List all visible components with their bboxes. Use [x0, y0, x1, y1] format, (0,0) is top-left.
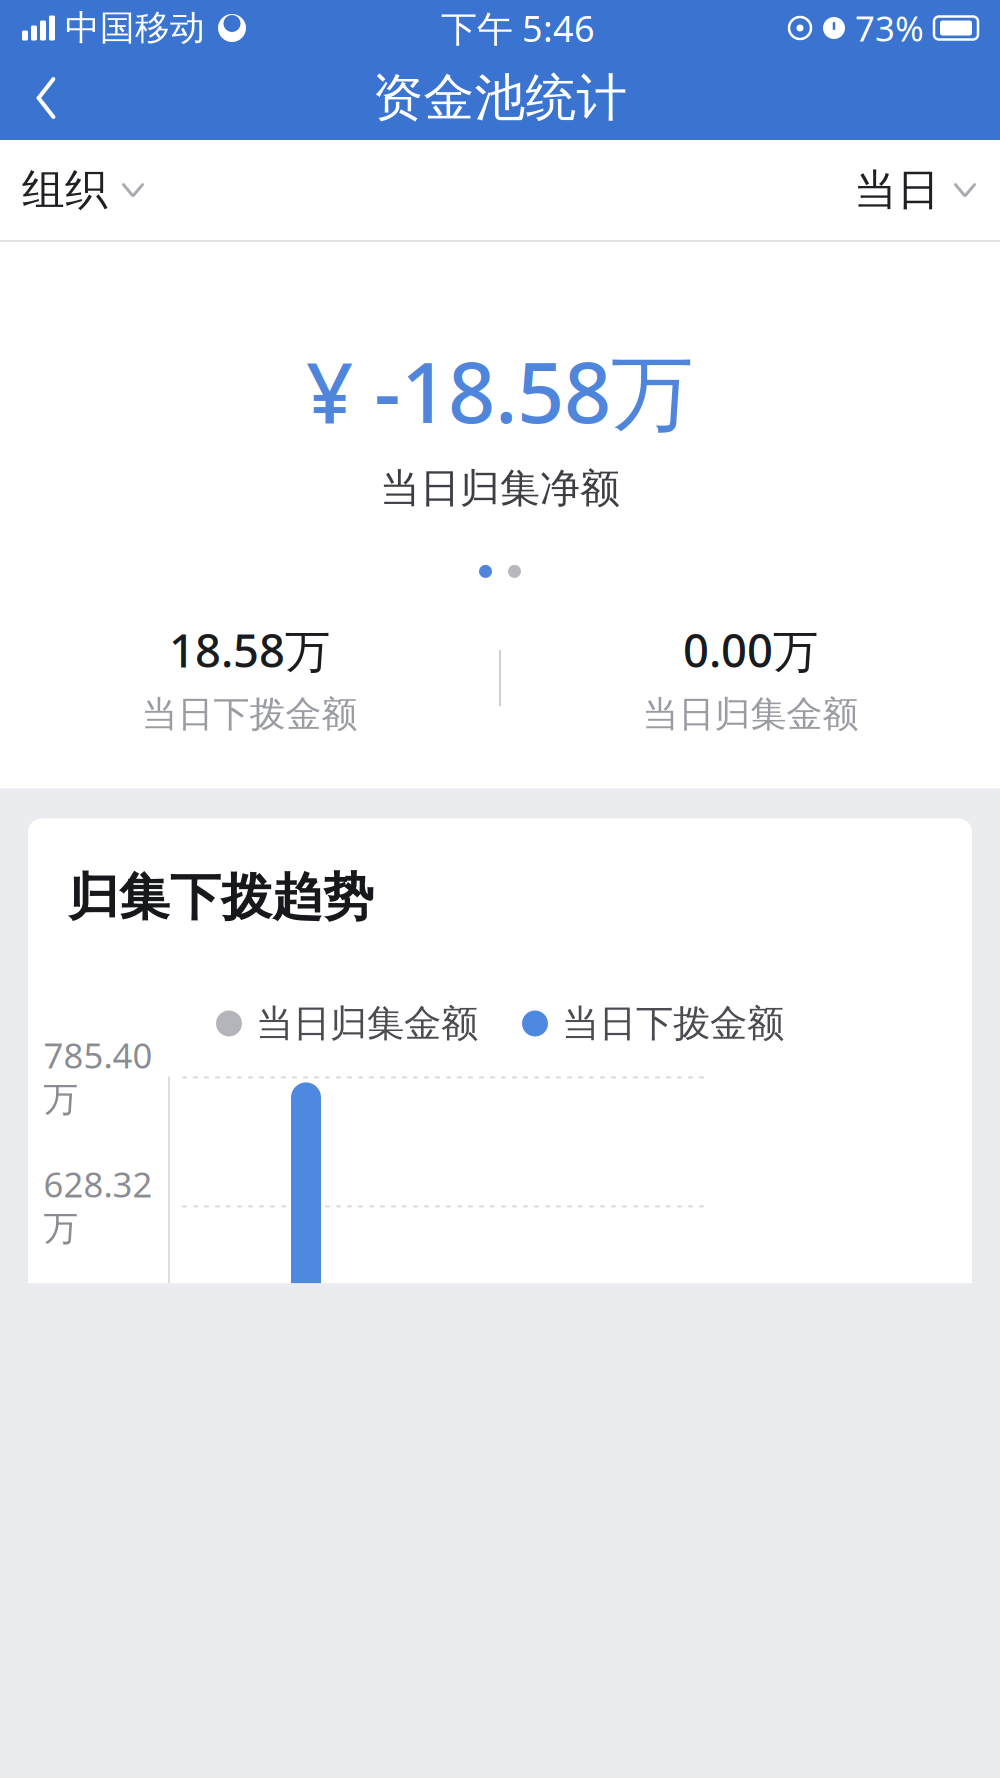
staticText: 当日下拨金额 [562, 1001, 784, 1046]
staticText: 归集下拨趋势 [68, 866, 374, 928]
staticText: 下午 5:46 [441, 4, 595, 52]
staticText: 当日归集金额 [642, 692, 858, 736]
staticText: 资金池统计 [372, 67, 627, 129]
staticText: 当日 [854, 164, 940, 216]
staticText: ¥ -18.58万 [306, 336, 694, 446]
button[interactable]: 当日 [854, 150, 978, 230]
button[interactable]: 组织 [22, 150, 146, 230]
staticText: 中国移动 [65, 7, 205, 49]
staticText: 当日归集净额 [380, 464, 620, 513]
button[interactable]: 返回 [18, 70, 74, 126]
staticText: 0.00万 [683, 620, 818, 680]
staticText: 18.58万 [169, 620, 330, 680]
staticText: 628.32万 [43, 1161, 152, 1250]
staticText: 785.40万 [43, 1032, 152, 1121]
staticText: 当日归集金额 [256, 1001, 478, 1046]
staticText: 组织 [22, 164, 108, 216]
staticText: 当日下拨金额 [141, 692, 357, 736]
staticText: 73% [855, 5, 924, 51]
